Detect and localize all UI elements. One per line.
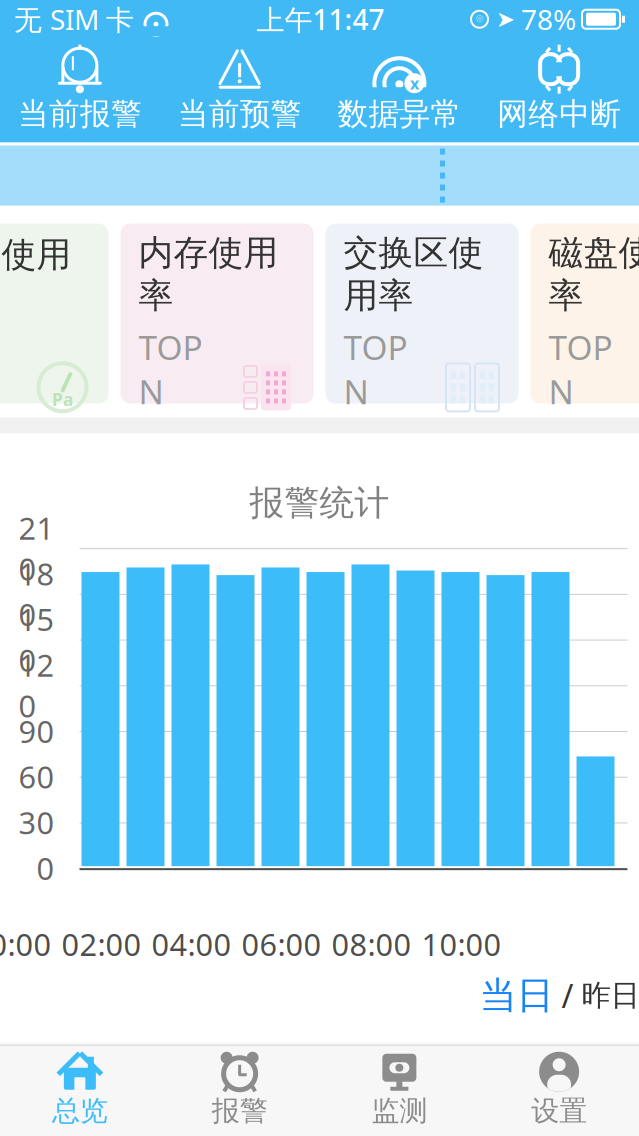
- button[interactable]: 昨日: [581, 977, 639, 1013]
- staticText: 02:00: [61, 924, 141, 965]
- staticText: 90: [18, 711, 54, 751]
- staticText: 180: [18, 553, 54, 634]
- staticText: TOP N: [343, 325, 407, 413]
- button[interactable]: 当日: [479, 973, 553, 1018]
- staticText: 10:00: [421, 924, 501, 965]
- staticText: 上午11:47: [256, 1, 384, 38]
- staticText: 无 SIM 卡: [14, 1, 134, 38]
- staticText: ➤: [496, 6, 515, 32]
- staticText: 00:00: [0, 924, 51, 965]
- staticText: 当前预警: [178, 95, 302, 133]
- staticText: 0: [36, 848, 54, 888]
- staticText: 当日: [479, 973, 553, 1018]
- staticText: 78%: [521, 1, 576, 38]
- staticText: 交换区使用率: [343, 232, 483, 317]
- staticText: 报警统计: [249, 482, 389, 524]
- staticText: 当前报警: [18, 95, 142, 133]
- staticText: TOP N: [548, 325, 612, 413]
- staticText: 30: [18, 802, 54, 843]
- button[interactable]: x: [319, 39, 479, 141]
- staticText: ⌾: [476, 13, 483, 25]
- staticText: 监测: [371, 1094, 427, 1128]
- staticText: 设置: [531, 1094, 587, 1128]
- staticText: 内存使用率: [138, 232, 278, 317]
- staticText: 04:00: [151, 924, 231, 965]
- staticText: /: [553, 974, 581, 1017]
- staticText: x: [410, 73, 419, 94]
- staticText: 210: [18, 507, 54, 589]
- staticText: TOP N: [138, 325, 202, 413]
- staticText: 08:00: [331, 924, 411, 965]
- staticText: CPU使用率: [0, 230, 71, 319]
- button[interactable]: 网络中断: [479, 39, 639, 141]
- staticText: 120: [18, 645, 54, 726]
- button[interactable]: 总览: [0, 1046, 160, 1136]
- staticText: 报警: [212, 1094, 268, 1128]
- button[interactable]: 监测: [319, 1046, 479, 1136]
- staticText: 150: [18, 599, 54, 680]
- button[interactable]: 内存使用率: [120, 224, 313, 404]
- staticText: 网络中断: [497, 95, 621, 133]
- button[interactable]: 磁盘使用率: [530, 224, 639, 404]
- staticText: 昨日: [581, 977, 639, 1013]
- button[interactable]: 当前预警: [160, 39, 320, 141]
- button[interactable]: 设置: [479, 1046, 639, 1136]
- button[interactable]: 交换区使用率: [325, 224, 518, 404]
- staticText: 磁盘使用率: [548, 232, 639, 317]
- button[interactable]: CPU使用率: [0, 224, 108, 404]
- staticText: 总览: [52, 1094, 108, 1128]
- button[interactable]: 报警: [160, 1046, 320, 1136]
- staticText: 数据异常: [337, 95, 461, 133]
- staticText: 06:00: [241, 924, 321, 965]
- staticText: Pa: [52, 388, 73, 411]
- staticText: 60: [18, 756, 54, 797]
- button[interactable]: 当前报警: [0, 39, 160, 141]
